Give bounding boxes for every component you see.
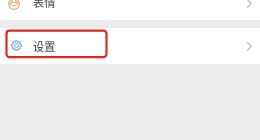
staticText: 设置 xyxy=(33,38,56,54)
button[interactable]: Settings xyxy=(0,28,260,64)
other: Emoji xyxy=(8,0,20,10)
other: Settings xyxy=(11,40,22,51)
staticText: 表情 xyxy=(33,0,56,10)
button[interactable]: Emoji xyxy=(0,0,260,20)
